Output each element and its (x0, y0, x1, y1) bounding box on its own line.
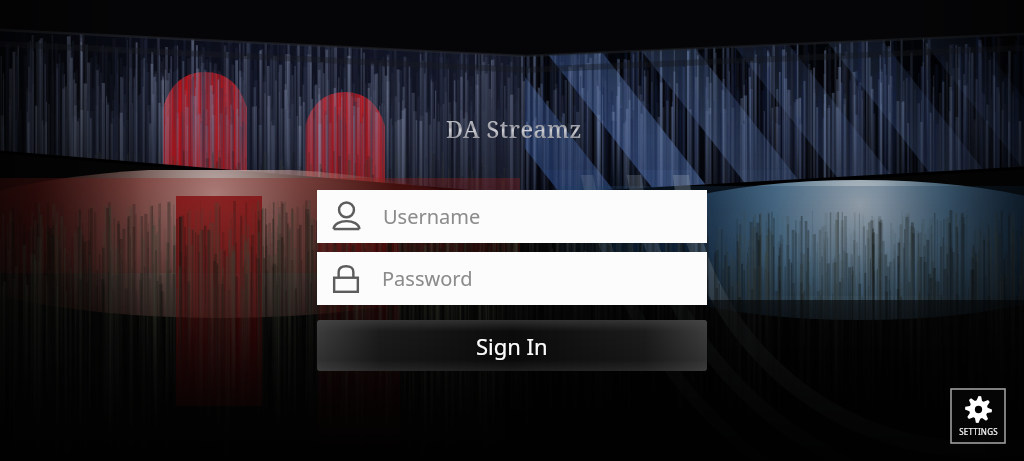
button[interactable]: Settings (951, 389, 1005, 443)
button[interactable]: Username (317, 190, 707, 243)
staticText: Sign In (476, 331, 548, 361)
button[interactable]: Sign In (317, 320, 707, 371)
staticText: Password (382, 265, 473, 292)
button[interactable]: Password (317, 252, 707, 305)
staticText: SETTINGS (959, 426, 998, 437)
staticText: DA Streamz (446, 113, 582, 144)
staticText: Username (383, 203, 481, 230)
